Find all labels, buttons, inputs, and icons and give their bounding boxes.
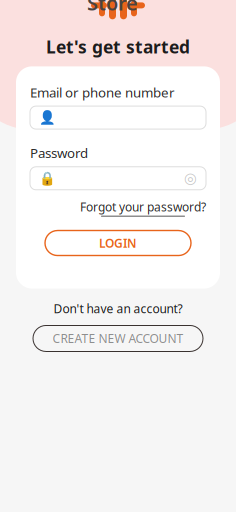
staticText: Password [30,144,88,162]
staticText: LOGIN [99,235,137,251]
button[interactable]: LOGIN [45,230,191,255]
staticText: Email or phone number [30,83,175,101]
staticText: Forgot your password? [80,199,206,215]
staticText: All N 1 Store [87,0,149,16]
staticText: Let's get started [46,35,190,58]
staticText: 🔒 [39,171,56,186]
staticText: ◎ [184,170,197,187]
staticText: Don't have an account? [53,300,182,316]
button[interactable]: CREATE NEW ACCOUNT [33,325,203,351]
button[interactable]: Forgot your password? [80,197,206,218]
staticText: CREATE NEW ACCOUNT [52,330,183,346]
staticText: 👤 [39,110,56,125]
